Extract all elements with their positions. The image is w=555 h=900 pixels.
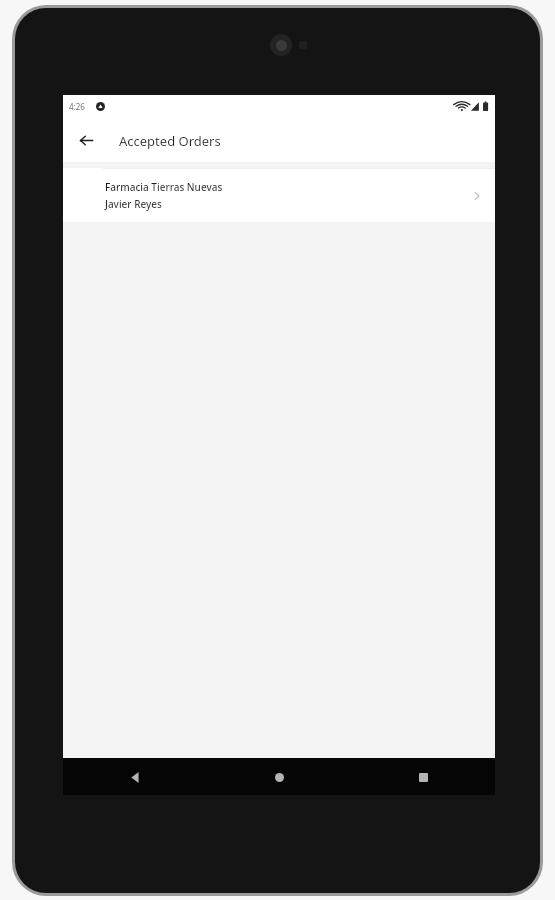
staticText: Accepted Orders: [119, 132, 221, 150]
button[interactable]: Back: [120, 762, 150, 792]
button[interactable]: Recent apps: [408, 762, 438, 792]
button[interactable]: Farmacia Tierras Nuevas: [63, 168, 495, 222]
button[interactable]: Back: [72, 126, 100, 154]
button[interactable]: Home: [264, 762, 294, 792]
staticText: 4:26: [69, 101, 85, 112]
staticText: Farmacia Tierras Nuevas: [105, 180, 223, 194]
staticText: Javier Reyes: [105, 197, 162, 211]
